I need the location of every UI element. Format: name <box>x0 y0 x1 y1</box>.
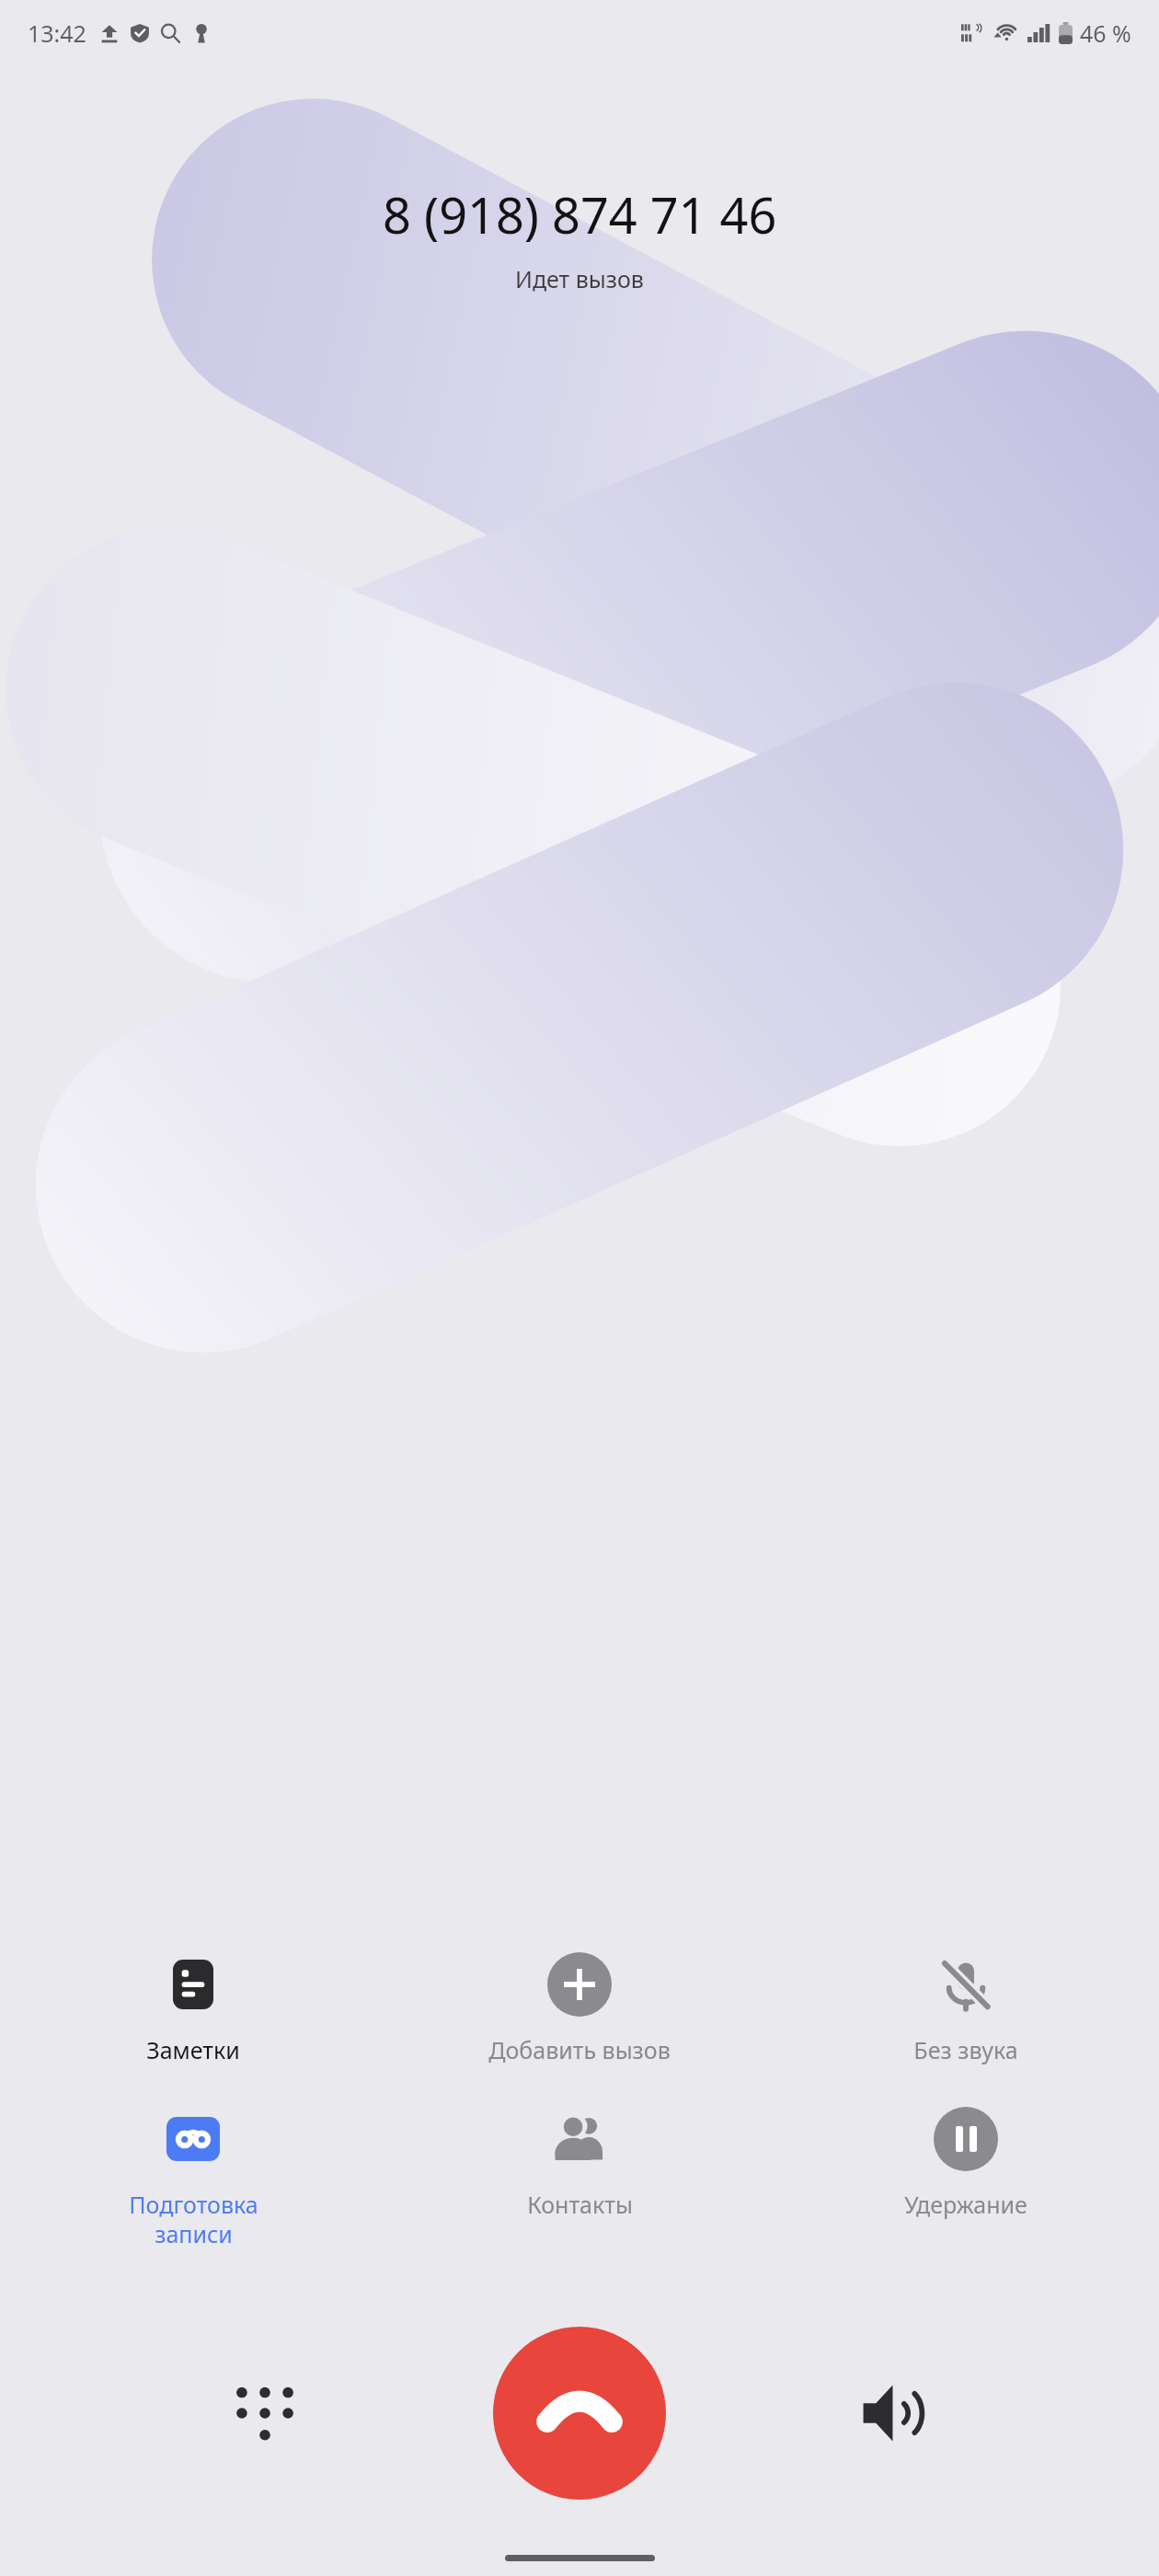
staticText: Добавить вызов <box>488 2034 671 2065</box>
button[interactable]: Без звука <box>773 1942 1159 2071</box>
staticText: 8 (918) 874 71 46 <box>383 180 777 248</box>
staticText: 46 % <box>1080 17 1131 49</box>
button[interactable]: End call <box>493 2327 666 2500</box>
staticText: 13:42 <box>28 17 86 49</box>
button[interactable]: Dialpad <box>210 2358 320 2468</box>
button[interactable]: Контакты <box>386 2097 773 2225</box>
button[interactable]: Заметки <box>0 1942 386 2071</box>
button[interactable]: Добавить вызов <box>386 1942 773 2071</box>
button[interactable]: Подготовка записи <box>0 2097 386 2255</box>
staticText: Заметки <box>146 2034 240 2065</box>
staticText: Удержание <box>904 2189 1027 2220</box>
staticText: Без звука <box>913 2034 1018 2065</box>
staticText: Подготовка записи <box>129 2189 258 2249</box>
staticText: Идет вызов <box>515 263 644 294</box>
button[interactable]: Удержание <box>773 2097 1159 2225</box>
button[interactable]: Speaker <box>839 2358 949 2468</box>
staticText: Контакты <box>527 2189 633 2220</box>
